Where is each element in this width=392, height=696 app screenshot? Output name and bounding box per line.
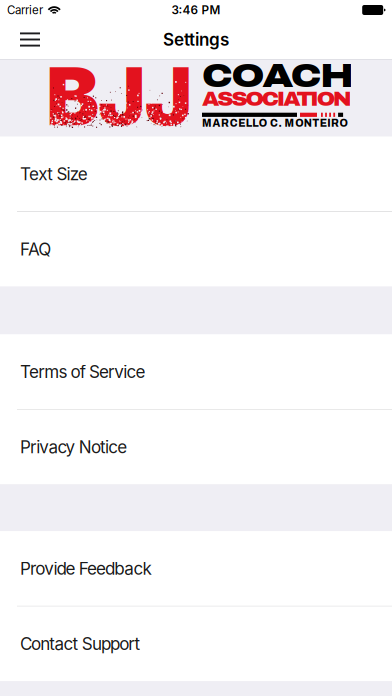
staticText: COACH xyxy=(202,58,353,94)
staticText: Contact Support xyxy=(20,633,140,654)
staticText: Terms of Service xyxy=(20,361,145,382)
staticText: ASSOCIATION xyxy=(202,87,351,110)
staticText: Provide Feedback xyxy=(20,558,151,579)
button[interactable]: Terms of Service xyxy=(0,334,392,409)
button[interactable]: Provide Feedback xyxy=(0,531,392,606)
button[interactable]: FAQ xyxy=(0,212,392,286)
button[interactable]: Text Size xyxy=(0,137,392,211)
button[interactable]: Menu xyxy=(9,20,51,59)
staticText: BJJ xyxy=(46,48,193,144)
button[interactable]: Contact Support xyxy=(0,607,392,681)
staticText: MARCELLO C. MONTEIRO xyxy=(202,117,347,129)
staticText: Settings xyxy=(163,29,229,50)
staticText: Privacy Notice xyxy=(20,437,127,457)
staticText: Carrier xyxy=(7,3,43,17)
staticText: Text Size xyxy=(20,164,88,184)
staticText: FAQ xyxy=(20,239,51,259)
staticText: 3:46 PM xyxy=(171,3,220,17)
button[interactable]: Privacy Notice xyxy=(0,410,392,484)
